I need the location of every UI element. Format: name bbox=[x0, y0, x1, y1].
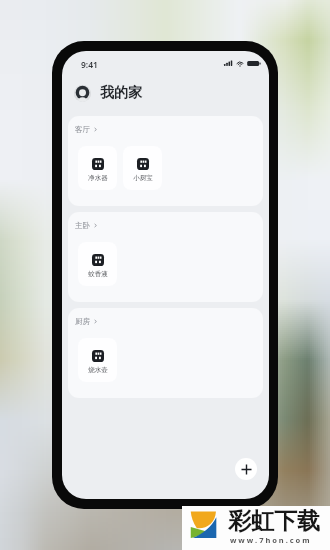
staticText: 我的家 bbox=[100, 84, 142, 102]
button[interactable]: 净水器 bbox=[78, 146, 117, 190]
button[interactable]: 主卧 bbox=[75, 221, 98, 230]
button[interactable]: 厨房 bbox=[75, 317, 98, 326]
button[interactable]: 烧水壶 bbox=[78, 338, 117, 382]
staticText: 蚊香液 bbox=[88, 270, 108, 278]
staticText: 彩虹下载 bbox=[228, 507, 320, 536]
staticText: 烧水壶 bbox=[88, 366, 108, 374]
button[interactable]: 蚊香液 bbox=[78, 242, 117, 286]
staticText: w w w . 7 h o n . c o m bbox=[230, 535, 310, 545]
staticText: 客厅 bbox=[75, 125, 90, 134]
button[interactable]: 客厅 bbox=[75, 125, 98, 134]
staticText: 小厨宝 bbox=[133, 174, 153, 182]
staticText: 净水器 bbox=[88, 174, 108, 182]
button[interactable]: 小厨宝 bbox=[123, 146, 162, 190]
staticText: 9:41 bbox=[81, 59, 98, 71]
staticText: 主卧 bbox=[75, 221, 90, 230]
button[interactable]: Add device bbox=[235, 458, 257, 480]
staticText: 厨房 bbox=[75, 317, 90, 326]
button[interactable]: Profile bbox=[74, 85, 91, 102]
